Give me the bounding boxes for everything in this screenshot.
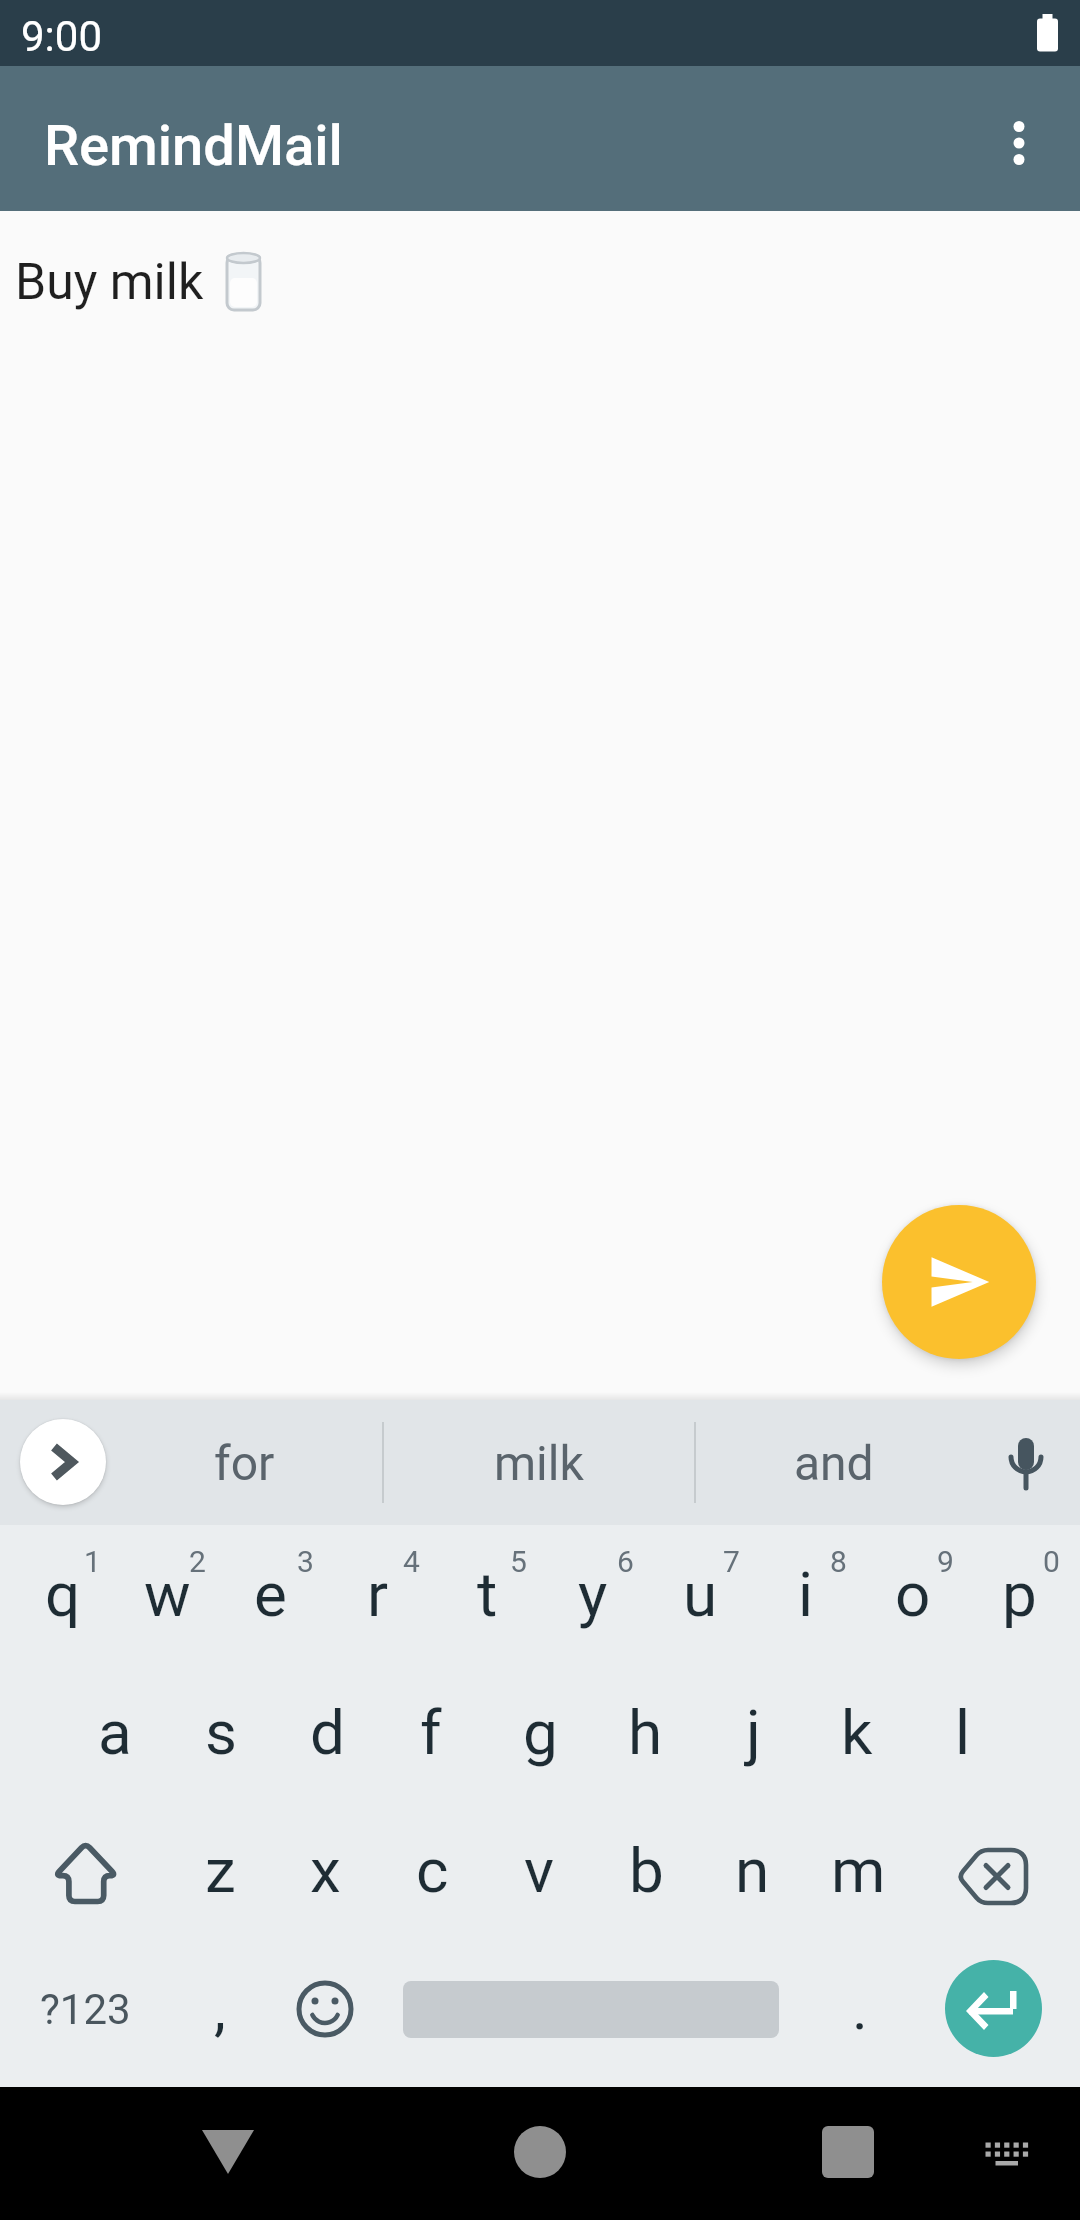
staticText: milk — [494, 1435, 584, 1491]
staticText: and — [794, 1435, 874, 1491]
button[interactable]: c — [362, 1800, 502, 1940]
button[interactable]: a — [45, 1662, 185, 1802]
button[interactable] — [168, 2092, 288, 2212]
staticText: s — [205, 1696, 237, 1769]
button[interactable]: s — [151, 1662, 291, 1802]
button[interactable]: , — [150, 1938, 290, 2078]
button[interactable]: r — [308, 1524, 448, 1664]
staticText: f — [420, 1696, 442, 1769]
staticText: x — [310, 1834, 341, 1907]
staticText: 9 — [937, 1544, 954, 1579]
button[interactable] — [933, 1812, 1053, 1932]
button[interactable]: ?123 — [15, 1939, 155, 2079]
button[interactable]: j — [683, 1662, 823, 1802]
staticText: b — [629, 1834, 664, 1907]
staticText: o — [895, 1558, 931, 1631]
staticText: 6 — [617, 1544, 634, 1579]
staticText: w — [144, 1558, 191, 1631]
staticText: n — [735, 1834, 770, 1907]
button[interactable]: w — [97, 1524, 237, 1664]
staticText: j — [746, 1696, 761, 1769]
button[interactable]: and — [695, 1400, 972, 1525]
staticText: 4 — [403, 1544, 420, 1579]
button[interactable]: b — [576, 1800, 716, 1940]
staticText: 8 — [830, 1544, 847, 1579]
button[interactable] — [945, 1960, 1042, 2057]
staticText: ?123 — [40, 1985, 131, 2034]
staticText: . — [852, 1973, 868, 2043]
button[interactable]: q — [0, 1524, 133, 1664]
staticText: 9:00 — [21, 12, 102, 61]
staticText: e — [254, 1558, 287, 1631]
button[interactable] — [972, 1400, 1080, 1525]
button[interactable]: x — [255, 1800, 395, 1940]
button[interactable]: u — [630, 1524, 770, 1664]
button[interactable]: l — [893, 1662, 1033, 1802]
button[interactable]: d — [257, 1662, 397, 1802]
staticText: z — [205, 1834, 236, 1907]
button[interactable]: y — [523, 1524, 663, 1664]
button[interactable]: milk — [383, 1400, 695, 1525]
staticText: h — [628, 1696, 663, 1769]
button[interactable]: . — [790, 1938, 930, 2078]
button[interactable]: h — [575, 1662, 715, 1802]
staticText: 0 — [1043, 1544, 1060, 1579]
button[interactable] — [788, 2092, 908, 2212]
staticText: RemindMail — [44, 113, 343, 179]
button[interactable]: z — [150, 1800, 290, 1940]
staticText: Buy milk — [15, 253, 204, 312]
staticText: d — [310, 1696, 345, 1769]
button[interactable] — [944, 2092, 1064, 2212]
button[interactable] — [882, 1205, 1036, 1359]
button[interactable]: p — [949, 1524, 1080, 1664]
button[interactable]: o — [843, 1524, 983, 1664]
button[interactable]: t — [417, 1524, 557, 1664]
button[interactable]: g — [470, 1662, 610, 1802]
staticText: m — [831, 1834, 886, 1907]
staticText: i — [798, 1558, 814, 1631]
staticText: , — [214, 1973, 226, 2043]
staticText: a — [98, 1696, 132, 1769]
staticText: t — [477, 1558, 498, 1631]
button[interactable]: n — [682, 1800, 822, 1940]
staticText: v — [524, 1834, 555, 1907]
staticText: q — [45, 1558, 81, 1631]
staticText: u — [683, 1558, 718, 1631]
staticText: g — [523, 1696, 558, 1769]
button[interactable]: f — [361, 1662, 501, 1802]
button[interactable]: e — [200, 1524, 340, 1664]
button[interactable]: for — [106, 1400, 383, 1525]
button[interactable]: k — [787, 1662, 927, 1802]
staticText: c — [416, 1834, 449, 1907]
button[interactable]: i — [736, 1524, 876, 1664]
staticText: k — [841, 1696, 873, 1769]
button[interactable] — [480, 2092, 600, 2212]
button[interactable]: v — [469, 1800, 609, 1940]
staticText: l — [955, 1696, 971, 1769]
staticText: y — [578, 1558, 608, 1631]
button[interactable] — [24, 1812, 144, 1932]
staticText: 7 — [723, 1544, 740, 1579]
staticText: 1 — [84, 1544, 101, 1579]
staticText: for — [214, 1435, 275, 1491]
staticText: 5 — [510, 1544, 527, 1579]
staticText: 2 — [189, 1544, 206, 1579]
button[interactable] — [959, 66, 1080, 211]
button[interactable]: m — [788, 1800, 928, 1940]
button[interactable] — [265, 1949, 385, 2069]
button[interactable] — [20, 1419, 106, 1505]
staticText: 3 — [297, 1544, 314, 1579]
staticText: p — [1002, 1558, 1037, 1631]
staticText: r — [367, 1558, 389, 1631]
